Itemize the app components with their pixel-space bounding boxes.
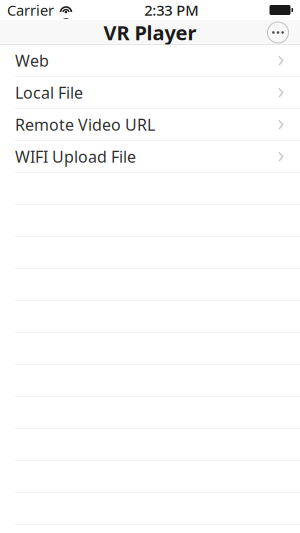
button[interactable]: WIFI Upload File [0,141,300,173]
staticText: Web [15,50,49,71]
staticText: WIFI Upload File [15,146,136,167]
staticText: Remote Video URL [15,114,155,135]
staticText: Carrier [7,0,54,20]
button[interactable]: Web [0,45,300,77]
button[interactable]: Remote Video URL [0,109,300,141]
button[interactable]: More options [263,20,293,45]
staticText: Local File [15,82,83,103]
staticText: 2:33 PM [144,0,198,20]
staticText: VR Player [103,19,196,46]
button[interactable]: Local File [0,77,300,109]
